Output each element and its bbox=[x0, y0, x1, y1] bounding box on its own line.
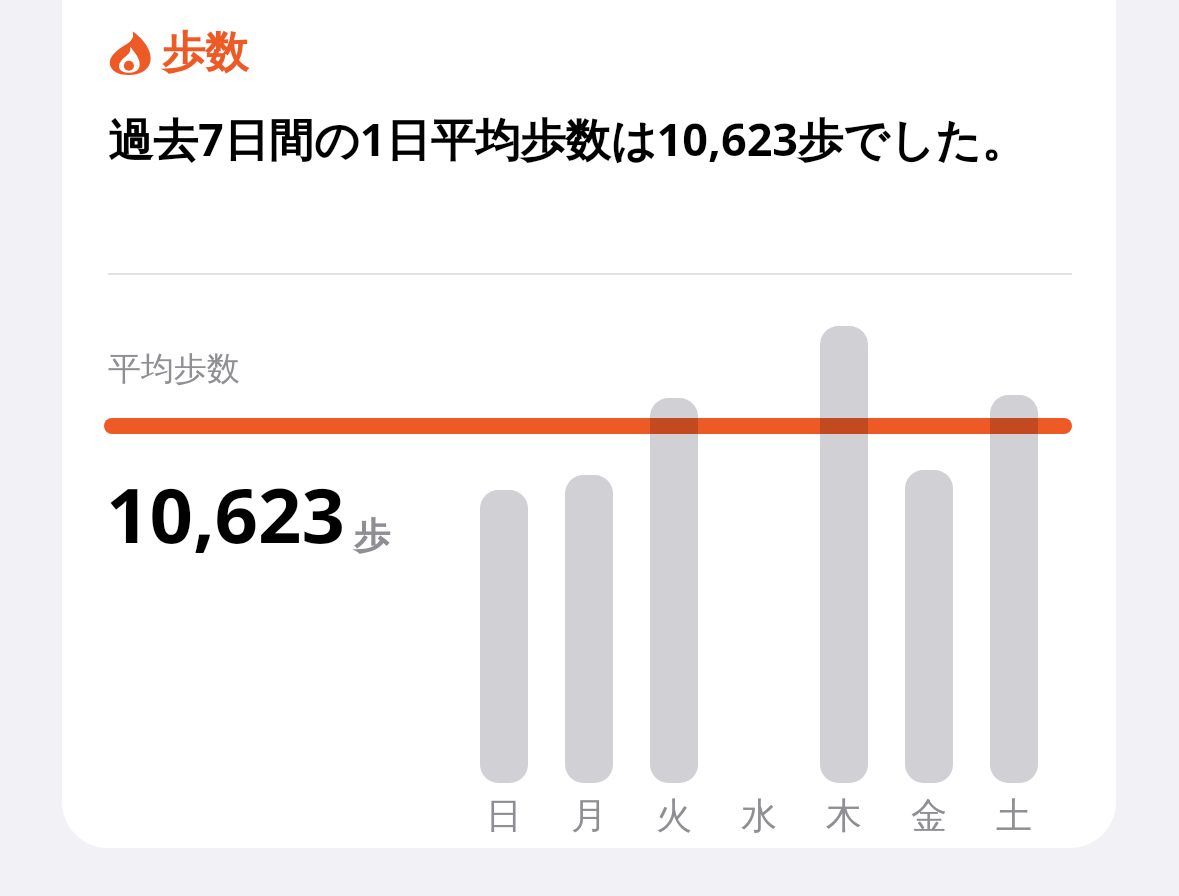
staticText: 日 bbox=[486, 793, 522, 838]
button[interactable]: 月 bbox=[551, 793, 627, 838]
staticText: 土 bbox=[996, 793, 1032, 838]
staticText: 歩数 bbox=[162, 26, 248, 80]
button[interactable]: 土 bbox=[976, 793, 1052, 838]
button[interactable]: 歩数 bbox=[108, 26, 260, 80]
staticText: 歩 bbox=[354, 513, 390, 558]
button[interactable] bbox=[62, 0, 1116, 848]
staticText: 火 bbox=[656, 793, 692, 838]
staticText: 月 bbox=[571, 793, 607, 838]
button[interactable]: 金 bbox=[891, 793, 967, 838]
staticText: 10,623 bbox=[106, 462, 346, 566]
other: 歩数 bbox=[108, 31, 152, 75]
staticText: 平均歩数 bbox=[108, 348, 240, 390]
other: 週間歩数グラフ bbox=[0, 0, 1179, 896]
button[interactable]: 日 bbox=[466, 793, 542, 838]
staticText: 水 bbox=[741, 793, 777, 838]
staticText: 木 bbox=[826, 793, 862, 838]
staticText: 金 bbox=[911, 793, 947, 838]
button[interactable]: 火 bbox=[636, 793, 712, 838]
button[interactable]: 木 bbox=[806, 793, 882, 838]
staticText: 過去7日間の1日平均歩数は10,623歩でした。 bbox=[108, 108, 1027, 169]
button[interactable]: 水 bbox=[721, 793, 797, 838]
